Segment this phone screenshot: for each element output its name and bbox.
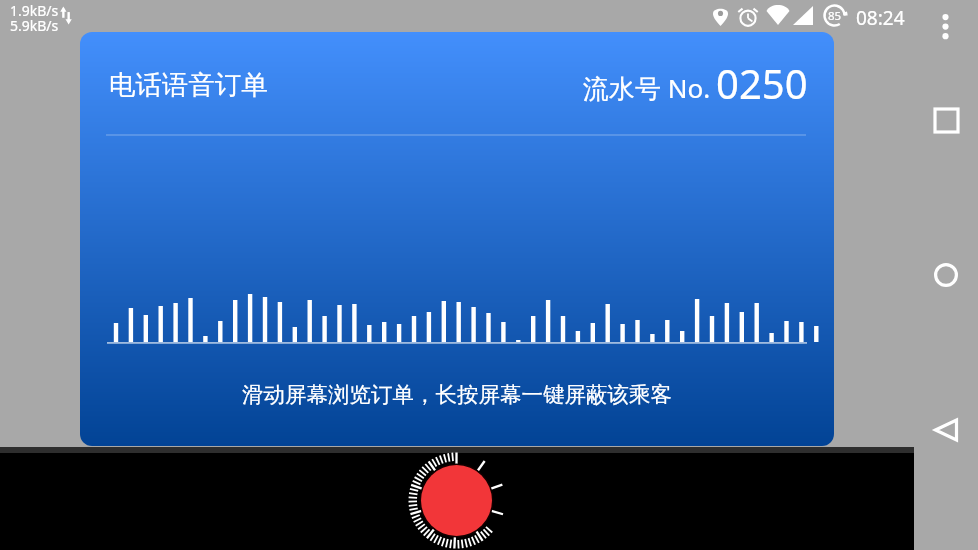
button[interactable]: More options bbox=[928, 0, 964, 54]
staticText: 08:24 bbox=[856, 5, 905, 31]
button[interactable]: Recent apps bbox=[922, 96, 970, 144]
staticText: 5.9kB/s bbox=[10, 16, 59, 35]
staticText: 85 bbox=[828, 8, 842, 24]
button[interactable]: Record bbox=[398, 442, 515, 550]
button[interactable]: Home bbox=[922, 251, 970, 299]
staticText: 0250 bbox=[716, 56, 808, 110]
staticText: 1.9kB/s bbox=[10, 1, 59, 20]
button[interactable]: Back bbox=[922, 406, 970, 454]
staticText: 滑动屏幕浏览订单，长按屏幕一键屏蔽该乘客 bbox=[242, 381, 672, 408]
staticText: 电话语音订单 bbox=[109, 68, 268, 101]
button[interactable]: 电话语音订单 bbox=[80, 32, 834, 446]
staticText: 流水号 No. bbox=[583, 70, 711, 106]
